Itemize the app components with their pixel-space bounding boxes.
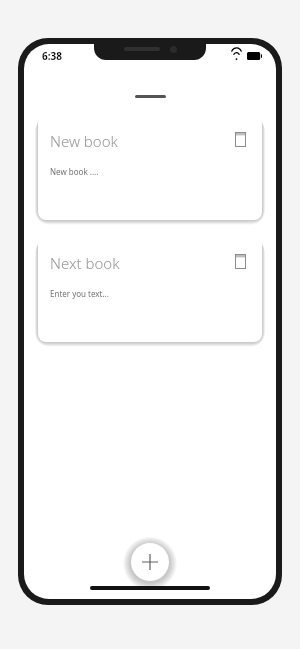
button[interactable]: New book <box>38 115 262 220</box>
staticText: Enter you text... <box>50 288 109 299</box>
button[interactable]: Add new note <box>131 543 169 581</box>
button[interactable]: Book <box>230 251 250 271</box>
button[interactable]: Book <box>230 129 250 149</box>
staticText: 6:38 <box>42 49 62 63</box>
staticText: New book <box>50 131 118 151</box>
staticText: Next book <box>50 253 120 273</box>
button[interactable]: Next book <box>38 237 262 342</box>
staticText: New book .... <box>50 166 99 177</box>
